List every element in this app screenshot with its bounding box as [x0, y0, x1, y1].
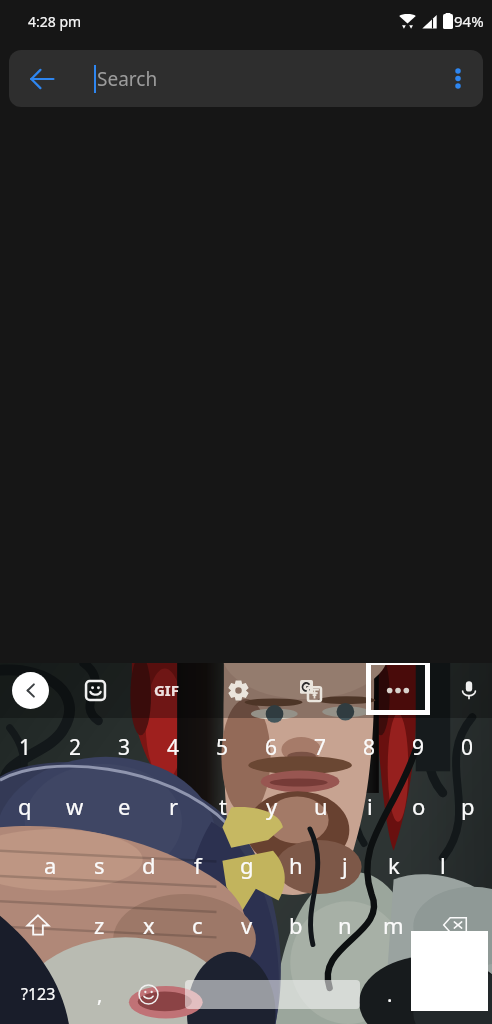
- staticText: c: [192, 910, 203, 940]
- staticText: r: [169, 791, 179, 821]
- staticText: t: [219, 791, 227, 821]
- button[interactable]: More options: [433, 50, 483, 107]
- button[interactable]: z: [75, 895, 124, 955]
- button[interactable]: GIF: [144, 670, 188, 710]
- staticText: e: [118, 791, 131, 821]
- staticText: i: [367, 791, 373, 821]
- button[interactable]: 7: [296, 718, 345, 777]
- button[interactable]: j: [320, 835, 369, 895]
- button[interactable]: Back: [12, 672, 49, 709]
- button[interactable]: l: [418, 835, 467, 895]
- button[interactable]: v: [222, 895, 271, 955]
- button[interactable]: 0: [443, 718, 492, 777]
- button[interactable]: Enter: [412, 964, 492, 1024]
- staticText: q: [18, 791, 32, 821]
- button[interactable]: 5: [198, 718, 247, 777]
- staticText: x: [143, 910, 155, 940]
- button[interactable]: 3: [100, 718, 149, 777]
- staticText: f: [194, 850, 202, 880]
- button[interactable]: g: [222, 835, 271, 895]
- button[interactable]: e: [100, 777, 149, 835]
- button[interactable]: b: [271, 895, 320, 955]
- button[interactable]: More: [366, 663, 430, 715]
- button[interactable]: Settings: [218, 670, 258, 710]
- staticText: k: [388, 850, 400, 880]
- staticText: 2: [69, 733, 82, 762]
- button[interactable]: p: [443, 777, 492, 835]
- staticText: u: [314, 791, 328, 821]
- button[interactable]: Voice input: [449, 670, 489, 710]
- staticText: z: [94, 910, 105, 940]
- button[interactable]: i: [345, 777, 394, 835]
- button[interactable]: h: [271, 835, 320, 895]
- button[interactable]: 6: [247, 718, 296, 777]
- button[interactable]: r: [149, 777, 198, 835]
- button[interactable]: .: [368, 964, 412, 1024]
- staticText: j: [342, 850, 348, 880]
- staticText: 1: [19, 733, 32, 762]
- staticText: ?123: [21, 983, 56, 1005]
- button[interactable]: Backspace: [418, 895, 492, 955]
- staticText: m: [383, 910, 404, 940]
- button[interactable]: m: [369, 895, 418, 955]
- button[interactable]: u: [296, 777, 345, 835]
- staticText: Search: [97, 66, 158, 92]
- staticText: n: [338, 910, 352, 940]
- button[interactable]: 4: [149, 718, 198, 777]
- staticText: ,: [97, 981, 103, 1008]
- button[interactable]: o: [394, 777, 443, 835]
- button[interactable]: 9: [394, 718, 443, 777]
- button[interactable]: d: [124, 835, 173, 895]
- button[interactable]: Emoji: [124, 964, 172, 1024]
- staticText: v: [241, 910, 253, 940]
- staticText: 94%: [454, 11, 484, 31]
- button[interactable]: 8: [345, 718, 394, 777]
- button[interactable]: f: [173, 835, 222, 895]
- button[interactable]: w: [50, 777, 100, 835]
- staticText: o: [412, 791, 426, 821]
- button[interactable]: a: [26, 835, 75, 895]
- button[interactable]: Translate: [290, 670, 330, 710]
- staticText: s: [94, 850, 105, 880]
- staticText: h: [289, 850, 303, 880]
- staticText: 8: [363, 733, 376, 762]
- staticText: GIF: [154, 680, 179, 700]
- staticText: .: [387, 981, 393, 1008]
- button[interactable]: ,: [76, 964, 124, 1024]
- staticText: y: [266, 791, 278, 821]
- button[interactable]: ?123: [6, 964, 70, 1024]
- staticText: d: [142, 850, 156, 880]
- button[interactable]: 1: [0, 718, 50, 777]
- staticText: 5: [216, 733, 229, 762]
- staticText: b: [289, 910, 303, 940]
- button[interactable]: n: [320, 895, 369, 955]
- staticText: 6: [265, 733, 278, 762]
- button[interactable]: s: [75, 835, 124, 895]
- button[interactable]: Stickers: [75, 670, 115, 710]
- staticText: 4:28 pm: [28, 12, 82, 31]
- staticText: g: [240, 850, 254, 880]
- staticText: w: [66, 791, 84, 821]
- button[interactable]: x: [124, 895, 173, 955]
- staticText: a: [44, 850, 57, 880]
- button[interactable]: k: [369, 835, 418, 895]
- staticText: 4: [167, 733, 180, 762]
- staticText: 3: [118, 733, 131, 762]
- staticText: 0: [461, 733, 474, 762]
- button[interactable]: Back: [9, 50, 74, 107]
- button[interactable]: 2: [50, 718, 100, 777]
- button[interactable]: Space: [176, 964, 366, 1024]
- button[interactable]: t: [198, 777, 247, 835]
- staticText: 9: [412, 733, 425, 762]
- staticText: p: [461, 791, 475, 821]
- button[interactable]: c: [173, 895, 222, 955]
- button[interactable]: q: [0, 777, 50, 835]
- staticText: l: [440, 850, 446, 880]
- staticText: 7: [314, 733, 327, 762]
- button[interactable]: Shift: [0, 895, 75, 955]
- button[interactable]: y: [247, 777, 296, 835]
